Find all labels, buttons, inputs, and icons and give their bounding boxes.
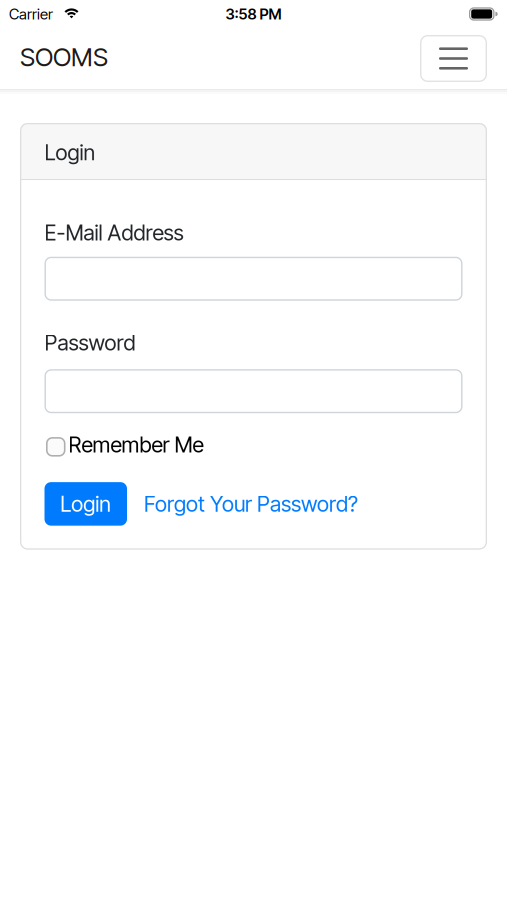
staticText: Remember Me [68, 432, 203, 458]
button[interactable]: Remember Me [44, 432, 203, 458]
staticText: SOOMS [20, 42, 108, 72]
button[interactable] [44, 257, 462, 301]
button[interactable] [420, 35, 487, 82]
staticText: E-Mail Address [44, 220, 183, 246]
staticText: 3:58 PM [225, 5, 281, 23]
staticText: Password [44, 330, 135, 356]
button[interactable]: Forgot Your Password? [144, 491, 358, 517]
staticText: Login [60, 491, 111, 517]
button[interactable]: Login [44, 482, 127, 526]
staticText: Forgot Your Password? [144, 491, 358, 517]
staticText: Carrier [9, 5, 53, 23]
staticText: Login [44, 139, 95, 165]
button[interactable] [44, 369, 462, 413]
